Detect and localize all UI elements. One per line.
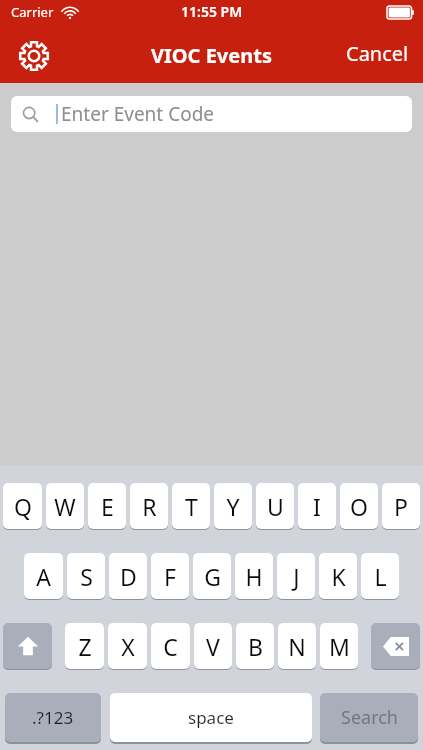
staticText: .?123 — [32, 706, 74, 729]
staticText: A — [36, 561, 51, 592]
button[interactable]: D — [109, 553, 147, 599]
button[interactable]: T — [172, 483, 210, 529]
staticText: N — [288, 631, 306, 662]
button[interactable]: L — [361, 553, 399, 599]
staticText: B — [248, 631, 263, 662]
staticText: G — [204, 561, 221, 592]
button[interactable]: Y — [214, 483, 252, 529]
button[interactable]: V — [194, 623, 232, 669]
button[interactable]: B — [236, 623, 274, 669]
staticText: U — [267, 491, 284, 522]
button[interactable]: Settings — [11, 33, 57, 79]
button[interactable]: K — [319, 553, 357, 599]
staticText: E — [101, 491, 114, 522]
staticText: V — [206, 631, 220, 662]
staticText: X — [121, 631, 135, 662]
staticText: Q — [14, 491, 32, 522]
staticText: Cancel — [346, 40, 409, 67]
staticText: O — [350, 491, 368, 522]
staticText: I — [313, 491, 321, 522]
button[interactable] — [3, 623, 52, 669]
button[interactable]: S — [67, 553, 105, 599]
staticText: T — [185, 491, 198, 522]
staticText: W — [54, 491, 76, 522]
button[interactable]: X — [108, 623, 147, 669]
button[interactable]: U — [256, 483, 294, 529]
staticText: L — [374, 561, 387, 592]
button[interactable]: Search — [320, 693, 418, 742]
button[interactable]: G — [193, 553, 231, 599]
button[interactable]: N — [278, 623, 316, 669]
button[interactable]: W — [46, 483, 84, 529]
button[interactable]: Cancel — [338, 33, 417, 73]
staticText: H — [245, 561, 263, 592]
button[interactable]: A — [24, 553, 63, 599]
button[interactable]: E — [88, 483, 126, 529]
staticText: M — [329, 631, 350, 662]
button[interactable]: I — [298, 483, 336, 529]
staticText: C — [163, 631, 178, 662]
button[interactable]: .?123 — [5, 693, 101, 742]
other: Shift — [3, 623, 52, 670]
button[interactable]: Q — [3, 483, 42, 529]
staticText: Search — [341, 705, 398, 730]
staticText: Enter Event Code — [61, 101, 215, 127]
button[interactable]: C — [151, 623, 190, 669]
button[interactable]: J — [277, 553, 315, 599]
staticText: Z — [78, 631, 92, 662]
button[interactable]: P — [382, 483, 420, 529]
button[interactable]: F — [151, 553, 189, 599]
button[interactable]: Enter Event Code — [11, 96, 412, 132]
staticText: VIOC Events — [151, 42, 272, 69]
staticText: D — [120, 561, 137, 592]
staticText: 11:55 PM — [181, 2, 243, 21]
staticText: J — [293, 561, 300, 592]
staticText: Carrier — [11, 3, 54, 21]
button[interactable]: space — [110, 693, 312, 742]
button[interactable]: O — [340, 483, 378, 529]
staticText: Y — [226, 491, 240, 522]
button[interactable]: Z — [65, 623, 104, 669]
button[interactable] — [371, 623, 420, 669]
button[interactable]: H — [235, 553, 273, 599]
button[interactable]: M — [320, 623, 358, 669]
button[interactable]: R — [130, 483, 168, 529]
staticText: space — [188, 706, 234, 729]
staticText: S — [80, 561, 93, 592]
staticText: P — [394, 491, 408, 522]
staticText: R — [142, 491, 157, 522]
other: Delete — [371, 623, 420, 670]
staticText: F — [164, 561, 176, 592]
staticText: K — [331, 561, 346, 592]
